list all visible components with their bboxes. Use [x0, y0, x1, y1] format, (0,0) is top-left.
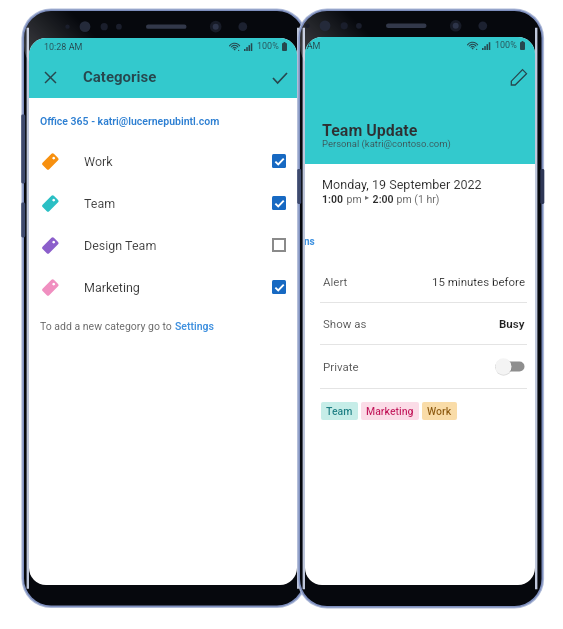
staticText: 1:00: [322, 193, 344, 205]
button[interactable]: Alert: [305, 260, 535, 302]
button[interactable]: Marketing: [29, 266, 297, 308]
staticText: 10:28 AM: [44, 42, 83, 53]
button[interactable]: Marketing: [361, 402, 419, 420]
staticText: Private: [323, 360, 359, 373]
staticText: Busy: [499, 317, 525, 330]
staticText: Team: [326, 405, 353, 417]
staticText: Alert: [323, 275, 348, 288]
button[interactable]: Work: [422, 402, 457, 420]
staticText: Team: [84, 196, 116, 211]
button[interactable]: Settings: [175, 320, 214, 332]
button[interactable]: Team: [321, 402, 358, 420]
button[interactable]: Design Team: [29, 224, 297, 266]
button[interactable]: Close: [35, 62, 66, 93]
staticText: Work: [427, 405, 452, 417]
staticText: pm: [344, 193, 365, 205]
staticText: Marketing: [366, 405, 414, 417]
button[interactable]: Team: [29, 182, 297, 224]
button[interactable]: Edit: [505, 63, 533, 91]
staticText: Team Update: [322, 121, 418, 140]
staticText: Monday, 19 September 2022: [322, 177, 482, 192]
button[interactable]: Work: [29, 140, 297, 182]
button[interactable]: Show as: [305, 303, 535, 344]
button[interactable]: Done: [264, 62, 295, 93]
staticText: Marketing: [84, 280, 140, 295]
button[interactable]: Private toggle: [305, 345, 535, 388]
staticText: 2:00: [370, 193, 394, 205]
staticText: Design Team: [84, 238, 157, 253]
staticText: To add a new category go to: [40, 320, 175, 332]
staticText: Personal (katri@contoso.com): [322, 138, 451, 149]
staticText: 10:28 AM: [305, 41, 321, 52]
staticText: Categorise: [83, 68, 157, 86]
staticText: 100%: [495, 40, 517, 51]
staticText: Show as: [323, 317, 367, 330]
staticText: Work: [84, 154, 113, 169]
staticText: 100%: [257, 41, 279, 52]
staticText: pm (1 hr): [394, 193, 440, 205]
staticText: ns: [305, 236, 315, 248]
staticText: Office 365 - katri@lucernepubintl.com: [40, 115, 220, 127]
staticText: 15 minutes before: [432, 275, 525, 288]
staticText: ▸: [365, 193, 370, 202]
